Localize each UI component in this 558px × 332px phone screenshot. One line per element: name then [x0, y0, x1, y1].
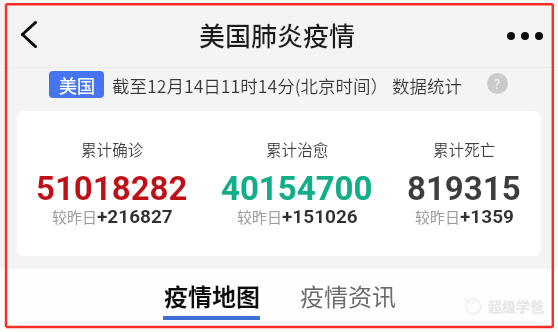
- staticText: 较昨日+151026: [237, 205, 358, 227]
- button[interactable]: More options: [499, 16, 551, 56]
- staticText: 美国: [59, 72, 95, 98]
- button[interactable]: 疫情资讯: [288, 278, 407, 318]
- staticText: 美国肺炎疫情: [199, 16, 356, 54]
- staticText: 疫情地图: [164, 278, 260, 313]
- button[interactable]: Back: [6, 12, 50, 56]
- staticText: 超级学爸: [488, 296, 544, 316]
- staticText: 较昨日+1359: [415, 205, 514, 227]
- staticText: 较昨日+216827: [52, 205, 173, 227]
- staticText: 疫情资讯: [300, 278, 396, 313]
- button[interactable]: Help: [487, 73, 508, 94]
- staticText: 819315: [407, 169, 521, 208]
- staticText: 累计死亡: [433, 138, 496, 161]
- button[interactable]: 疫情地图: [152, 278, 271, 322]
- staticText: 累计治愈: [266, 138, 329, 161]
- staticText: 40154700: [221, 169, 373, 208]
- staticText: 累计确诊: [81, 138, 144, 161]
- staticText: ?: [494, 74, 501, 93]
- staticText: 截至12月14日11时14分(北京时间） 数据统计: [112, 73, 463, 98]
- staticText: 51018282: [36, 169, 188, 208]
